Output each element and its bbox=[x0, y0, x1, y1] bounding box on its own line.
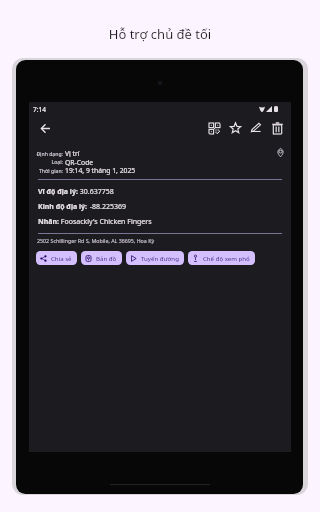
staticText: Chia sẻ bbox=[51, 254, 72, 262]
staticText: Hỗ trợ chủ đề tối bbox=[0, 25, 320, 43]
staticText: 19:14, 9 tháng 1, 2025 bbox=[65, 166, 136, 175]
staticText: Loại: bbox=[51, 159, 63, 166]
button[interactable]: Chế độ xem phố bbox=[188, 251, 255, 265]
staticText: Thời gian: bbox=[38, 168, 63, 175]
button[interactable]: Edit bbox=[248, 119, 264, 135]
staticText: Chế độ xem phố bbox=[203, 254, 250, 262]
staticText: Foosackly's Chicken Fingers bbox=[59, 217, 152, 227]
staticText: Định dạng: bbox=[36, 151, 63, 158]
button[interactable]: Scan QR code bbox=[206, 120, 222, 136]
button[interactable]: Back bbox=[37, 120, 53, 136]
staticText: Kinh độ địa lý: bbox=[38, 202, 88, 212]
staticText: QR-Code bbox=[65, 158, 94, 167]
staticText: Tuyến đường bbox=[141, 254, 179, 262]
staticText: Bản đồ bbox=[96, 254, 117, 262]
staticText: Vị trí bbox=[65, 149, 80, 158]
staticText: 7:14 bbox=[33, 105, 46, 114]
button[interactable]: Add to favorites bbox=[227, 120, 243, 136]
button[interactable]: Chia sẻ bbox=[36, 251, 77, 265]
staticText: -88.225369 bbox=[88, 202, 126, 212]
button[interactable]: Bản đồ bbox=[81, 251, 122, 265]
staticText: Vĩ độ địa lý: bbox=[38, 187, 78, 197]
staticText: Nhãn: bbox=[38, 217, 59, 227]
button[interactable]: Tuyến đường bbox=[126, 251, 184, 265]
button[interactable]: Delete bbox=[269, 120, 285, 136]
staticText: 2502 Schillinger Rd S, Mobile, AL 36695,… bbox=[37, 237, 155, 244]
staticText: 30.637758 bbox=[78, 187, 114, 197]
button[interactable]: Show on map bbox=[272, 144, 288, 160]
